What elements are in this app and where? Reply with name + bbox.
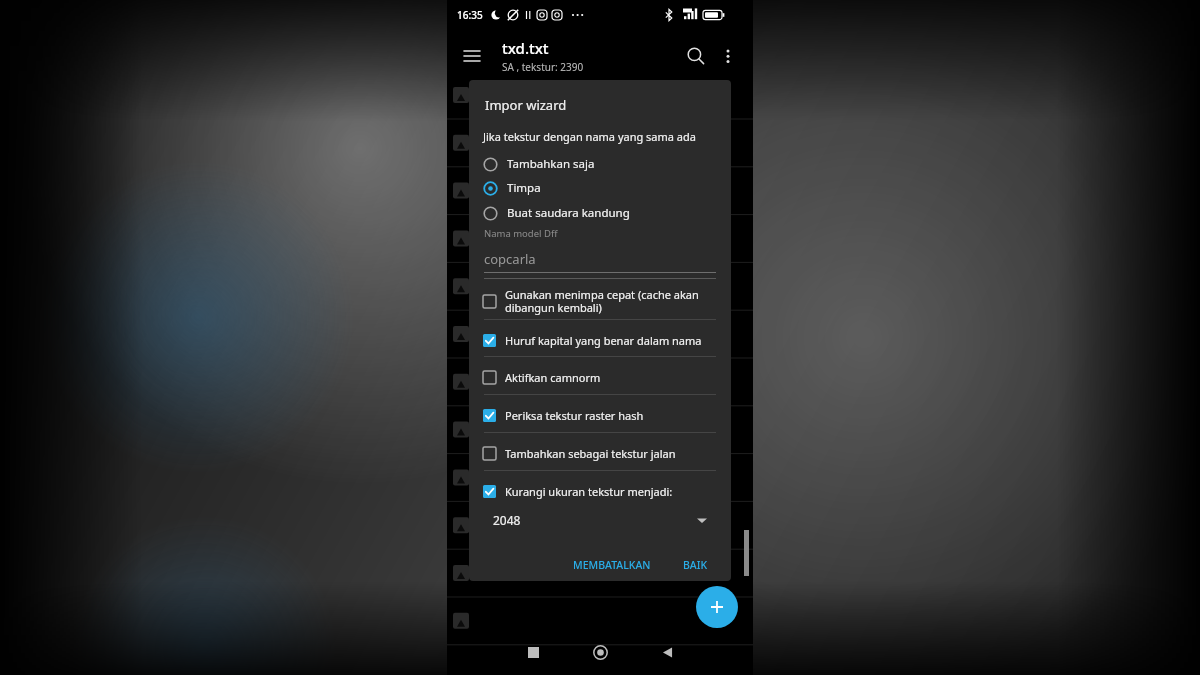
button[interactable]: Menu xyxy=(455,39,489,73)
button[interactable]: Buat saudara kandung xyxy=(483,202,717,224)
button[interactable]: Search xyxy=(679,39,713,73)
staticText: Timpa xyxy=(507,180,541,196)
staticText: Aktifkan camnorm xyxy=(505,370,601,385)
staticText: Buat saudara kandung xyxy=(507,205,630,221)
staticText: 2048 xyxy=(493,512,521,528)
button[interactable]: MEMBATALKAN xyxy=(565,550,659,580)
button[interactable]: Gunakan menimpa cepat (cache akan dibang… xyxy=(483,284,717,318)
staticText: Gunakan menimpa cepat (cache akan dibang… xyxy=(505,287,699,315)
staticText: Kurangi ukuran tekstur menjadi: xyxy=(505,484,673,499)
staticText: MEMBATALKAN xyxy=(573,558,651,572)
staticText: Impor wizard xyxy=(485,96,567,114)
button[interactable]: BAIK xyxy=(675,550,716,580)
staticText: 16:35 xyxy=(457,8,483,22)
staticText: Tambahkan saja xyxy=(507,156,595,172)
staticText: SA , tekstur: 2390 xyxy=(502,60,584,74)
button[interactable]: Add xyxy=(696,586,738,628)
staticText: Periksa tekstur raster hash xyxy=(505,408,644,423)
staticText: Huruf kapital yang benar dalam nama xyxy=(505,333,702,348)
button[interactable]: Recent apps xyxy=(515,634,551,670)
button[interactable]: Back xyxy=(649,634,685,670)
button[interactable]: Huruf kapital yang benar dalam nama xyxy=(483,326,717,354)
staticText: BAIK xyxy=(683,558,708,572)
button[interactable]: Aktifkan camnorm xyxy=(483,363,717,391)
staticText: Tambahkan sebagai tekstur jalan xyxy=(505,446,676,461)
button[interactable]: 2048 xyxy=(493,504,708,536)
button[interactable]: Periksa tekstur raster hash xyxy=(483,401,717,429)
button[interactable]: Tambahkan sebagai tekstur jalan xyxy=(483,439,717,467)
staticText: Nama model Dff xyxy=(484,227,558,240)
button[interactable]: More options xyxy=(711,39,745,73)
staticText: copcarla xyxy=(484,250,536,268)
button[interactable]: Tambahkan saja xyxy=(483,153,717,175)
button[interactable]: Kurangi ukuran tekstur menjadi: xyxy=(483,477,717,505)
staticText: txd.txt xyxy=(502,38,549,58)
button[interactable]: Timpa xyxy=(483,177,717,199)
staticText: Jika tekstur dengan nama yang sama ada xyxy=(483,129,696,144)
button[interactable]: Home xyxy=(582,634,618,670)
